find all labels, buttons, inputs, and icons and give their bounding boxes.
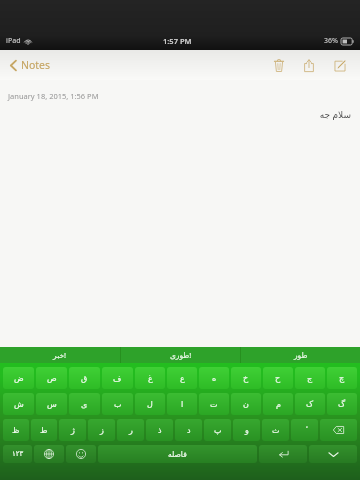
button[interactable]: ک xyxy=(295,393,325,415)
staticText: ض xyxy=(14,374,24,383)
button[interactable]: Switch keyboard xyxy=(34,445,64,463)
staticText: ن xyxy=(243,400,249,409)
staticText: ی xyxy=(81,400,88,409)
button[interactable]: ض xyxy=(3,367,34,389)
staticText: سلام جه xyxy=(319,108,351,120)
staticText: January 18, 2015, 1:56 PM xyxy=(8,91,99,101)
staticText: ر xyxy=(129,426,133,435)
staticText: طور xyxy=(294,351,308,360)
staticText: و xyxy=(245,426,249,435)
staticText: ظ xyxy=(12,426,20,435)
button[interactable]: ت xyxy=(199,393,229,415)
staticText: ص xyxy=(47,374,57,383)
button[interactable]: ا xyxy=(167,393,197,415)
button[interactable]: م xyxy=(263,393,293,415)
button[interactable]: چ xyxy=(327,367,357,389)
button[interactable]: ط xyxy=(31,419,57,441)
staticText: س xyxy=(47,400,57,409)
staticText: ک xyxy=(306,400,314,409)
button[interactable]: ظ xyxy=(3,419,29,441)
button[interactable]: ٔ xyxy=(291,419,318,441)
button[interactable]: ذ xyxy=(146,419,173,441)
button[interactable]: Notes xyxy=(6,54,55,76)
staticText: چ xyxy=(339,374,345,383)
staticText: 1:57 PM xyxy=(163,36,192,46)
button[interactable]: ز xyxy=(88,419,115,441)
staticText: م xyxy=(276,400,281,409)
button[interactable]: ح xyxy=(263,367,293,389)
staticText: ل xyxy=(147,400,153,409)
staticText: فاصله xyxy=(168,450,187,459)
button[interactable]: ق xyxy=(69,367,100,389)
button[interactable]: و xyxy=(233,419,260,441)
staticText: ج xyxy=(307,374,313,383)
staticText: طوری! xyxy=(170,350,192,360)
button[interactable]: خ xyxy=(231,367,261,389)
staticText: ت xyxy=(210,400,218,409)
staticText: ع xyxy=(180,374,185,383)
button[interactable]: فاصله xyxy=(98,445,257,463)
staticText: iPad xyxy=(6,36,21,46)
button[interactable]: ج xyxy=(295,367,325,389)
staticText: ز xyxy=(100,426,104,435)
button[interactable]: ی xyxy=(69,393,100,415)
button[interactable]: طوری! xyxy=(121,347,240,363)
button[interactable]: ف xyxy=(102,367,133,389)
button[interactable]: ل xyxy=(135,393,165,415)
staticText: پ xyxy=(214,426,222,435)
staticText: ژ xyxy=(71,426,75,435)
button[interactable]: ه xyxy=(199,367,229,389)
staticText: ق xyxy=(81,374,88,383)
button[interactable]: Share xyxy=(298,53,320,78)
button[interactable]: ژ xyxy=(59,419,86,441)
button[interactable]: د xyxy=(175,419,202,441)
staticText: غ xyxy=(148,374,153,383)
button[interactable]: خبر! xyxy=(0,347,120,363)
button[interactable]: ع xyxy=(167,367,197,389)
button[interactable]: Delete xyxy=(268,53,290,78)
staticText: ش xyxy=(14,400,24,409)
button[interactable]: Compose xyxy=(328,54,352,78)
staticText: گ xyxy=(338,400,346,409)
button[interactable]: ص xyxy=(36,367,67,389)
staticText: ب xyxy=(114,400,122,409)
staticText: Notes xyxy=(21,58,51,72)
staticText: 36% xyxy=(324,36,338,46)
button[interactable]: ب xyxy=(102,393,133,415)
button[interactable]: ١٢٣ xyxy=(3,445,32,463)
button[interactable]: Backspace xyxy=(320,419,357,441)
button[interactable]: Hide keyboard xyxy=(309,445,357,463)
button[interactable]: ش xyxy=(3,393,34,415)
button[interactable]: ث xyxy=(262,419,289,441)
staticText: ح xyxy=(275,374,281,383)
button[interactable]: Return xyxy=(259,445,307,463)
staticText: ث xyxy=(272,426,280,435)
staticText: خ xyxy=(243,374,249,383)
staticText: ذ xyxy=(158,426,162,435)
staticText: ا xyxy=(181,400,184,409)
button[interactable]: ر xyxy=(117,419,144,441)
button[interactable]: غ xyxy=(135,367,165,389)
button[interactable]: طور xyxy=(241,347,360,363)
staticText: ط xyxy=(40,426,48,435)
staticText: ١٢٣ xyxy=(12,450,24,458)
staticText: ف xyxy=(113,374,122,383)
button[interactable]: س xyxy=(36,393,67,415)
staticText: د xyxy=(187,426,191,435)
staticText: خبر! xyxy=(53,350,67,360)
button[interactable]: پ xyxy=(204,419,231,441)
button[interactable]: Emoji xyxy=(66,445,96,463)
staticText: ه xyxy=(212,374,217,383)
button[interactable]: گ xyxy=(327,393,357,415)
button[interactable]: ن xyxy=(231,393,261,415)
